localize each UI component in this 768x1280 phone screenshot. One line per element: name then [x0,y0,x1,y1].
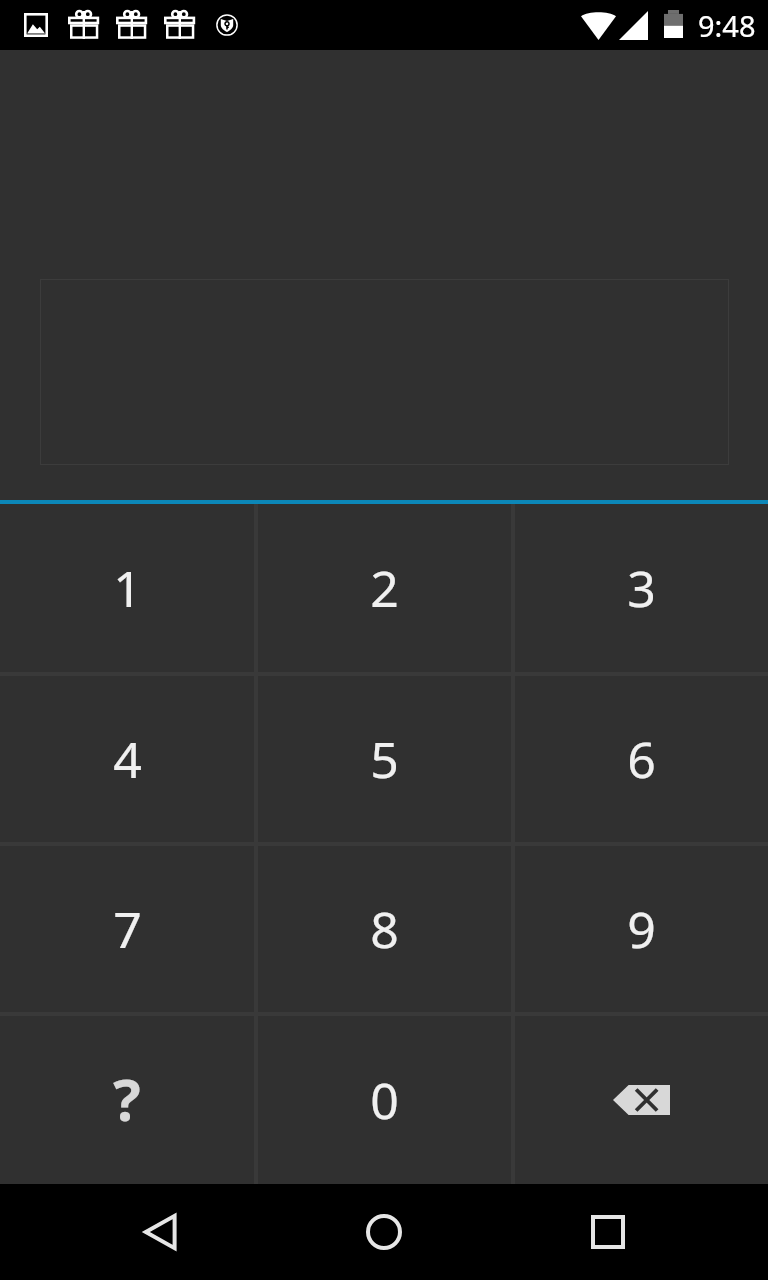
button[interactable]: Back [112,1184,208,1280]
button[interactable]: 8 [258,846,511,1012]
button[interactable]: 9 [515,846,768,1012]
staticText: 1 [113,554,142,622]
staticText: 7 [113,895,142,963]
button[interactable]: 1 [0,504,254,672]
button[interactable]: 5 [258,676,511,842]
staticText: 4 [113,725,142,793]
button[interactable]: 4 [0,676,254,842]
staticText: 0 [370,1066,399,1134]
button[interactable]: Backspace [515,1016,768,1184]
button[interactable]: 2 [258,504,511,672]
staticText: 8 [370,895,399,963]
staticText: 6 [627,725,656,793]
staticText: 9:48 [698,6,756,45]
staticText: 2 [370,554,399,622]
button[interactable]: 0 [258,1016,511,1184]
button[interactable]: Home [336,1184,432,1280]
staticText: ? [113,1059,141,1138]
button[interactable]: 3 [515,504,768,672]
button[interactable]: Help [0,1016,254,1184]
staticText: 3 [627,554,656,622]
staticText: 5 [370,725,399,793]
staticText: 9 [627,895,656,963]
button[interactable]: 7 [0,846,254,1012]
button[interactable]: 6 [515,676,768,842]
button[interactable]: Recent apps [560,1184,656,1280]
